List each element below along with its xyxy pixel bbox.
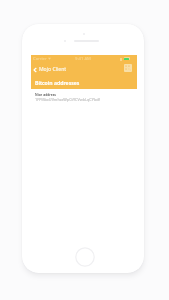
staticText: 9:41 AM bbox=[75, 56, 91, 62]
staticText: Mojo Client bbox=[39, 66, 67, 73]
button[interactable]: Mojo Client bbox=[32, 64, 137, 75]
staticText: Bitcoin addresses bbox=[35, 79, 80, 86]
staticText: Nice address bbox=[35, 92, 57, 96]
staticText: 1FPi5bxUVmhzzWpCtYCVwbLqCYbdf bbox=[35, 97, 100, 102]
button[interactable]: Home bbox=[75, 247, 95, 267]
button[interactable]: Scan QR code bbox=[123, 63, 133, 73]
staticText: Carrier bbox=[33, 56, 47, 62]
